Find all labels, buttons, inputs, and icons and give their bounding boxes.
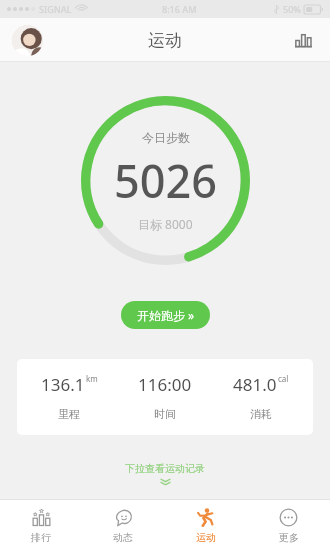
button[interactable]: 运动 [164,500,247,550]
staticText: 排行 [31,531,51,544]
staticText: 目标 8000 [138,216,193,232]
staticText: 50% [283,3,301,15]
staticText: 更多 [279,531,299,544]
button[interactable]: 排行 [0,500,82,550]
button[interactable]: 开始跑步 » [121,301,210,329]
staticText: 消耗 [250,407,272,421]
staticText: 8:16 AM [162,3,197,15]
staticText: cal [278,373,289,384]
button[interactable]: 136.1 [17,359,313,435]
staticText: SIGNAL [39,3,72,15]
staticText: 481.0 [233,373,277,396]
staticText: 动态 [113,531,133,544]
staticText: 5026 [114,150,217,211]
button[interactable]: Statistics [289,26,317,54]
staticText: 116:00 [138,373,192,396]
button[interactable]: 更多 [247,500,330,550]
staticText: 136.1 [41,373,85,396]
staticText: 时间 [154,407,176,421]
staticText: 运动 [196,531,216,544]
staticText: 里程 [58,407,80,421]
button[interactable]: Profile [12,25,43,56]
staticText: 下拉查看运动记录 [125,462,205,475]
staticText: 运动 [148,30,182,51]
staticText: 开始跑步 » [137,307,195,323]
button[interactable]: 下拉查看运动记录 [125,462,205,486]
staticText: 今日步数 [142,130,190,145]
button[interactable]: 动态 [82,500,164,550]
staticText: km [86,373,98,384]
